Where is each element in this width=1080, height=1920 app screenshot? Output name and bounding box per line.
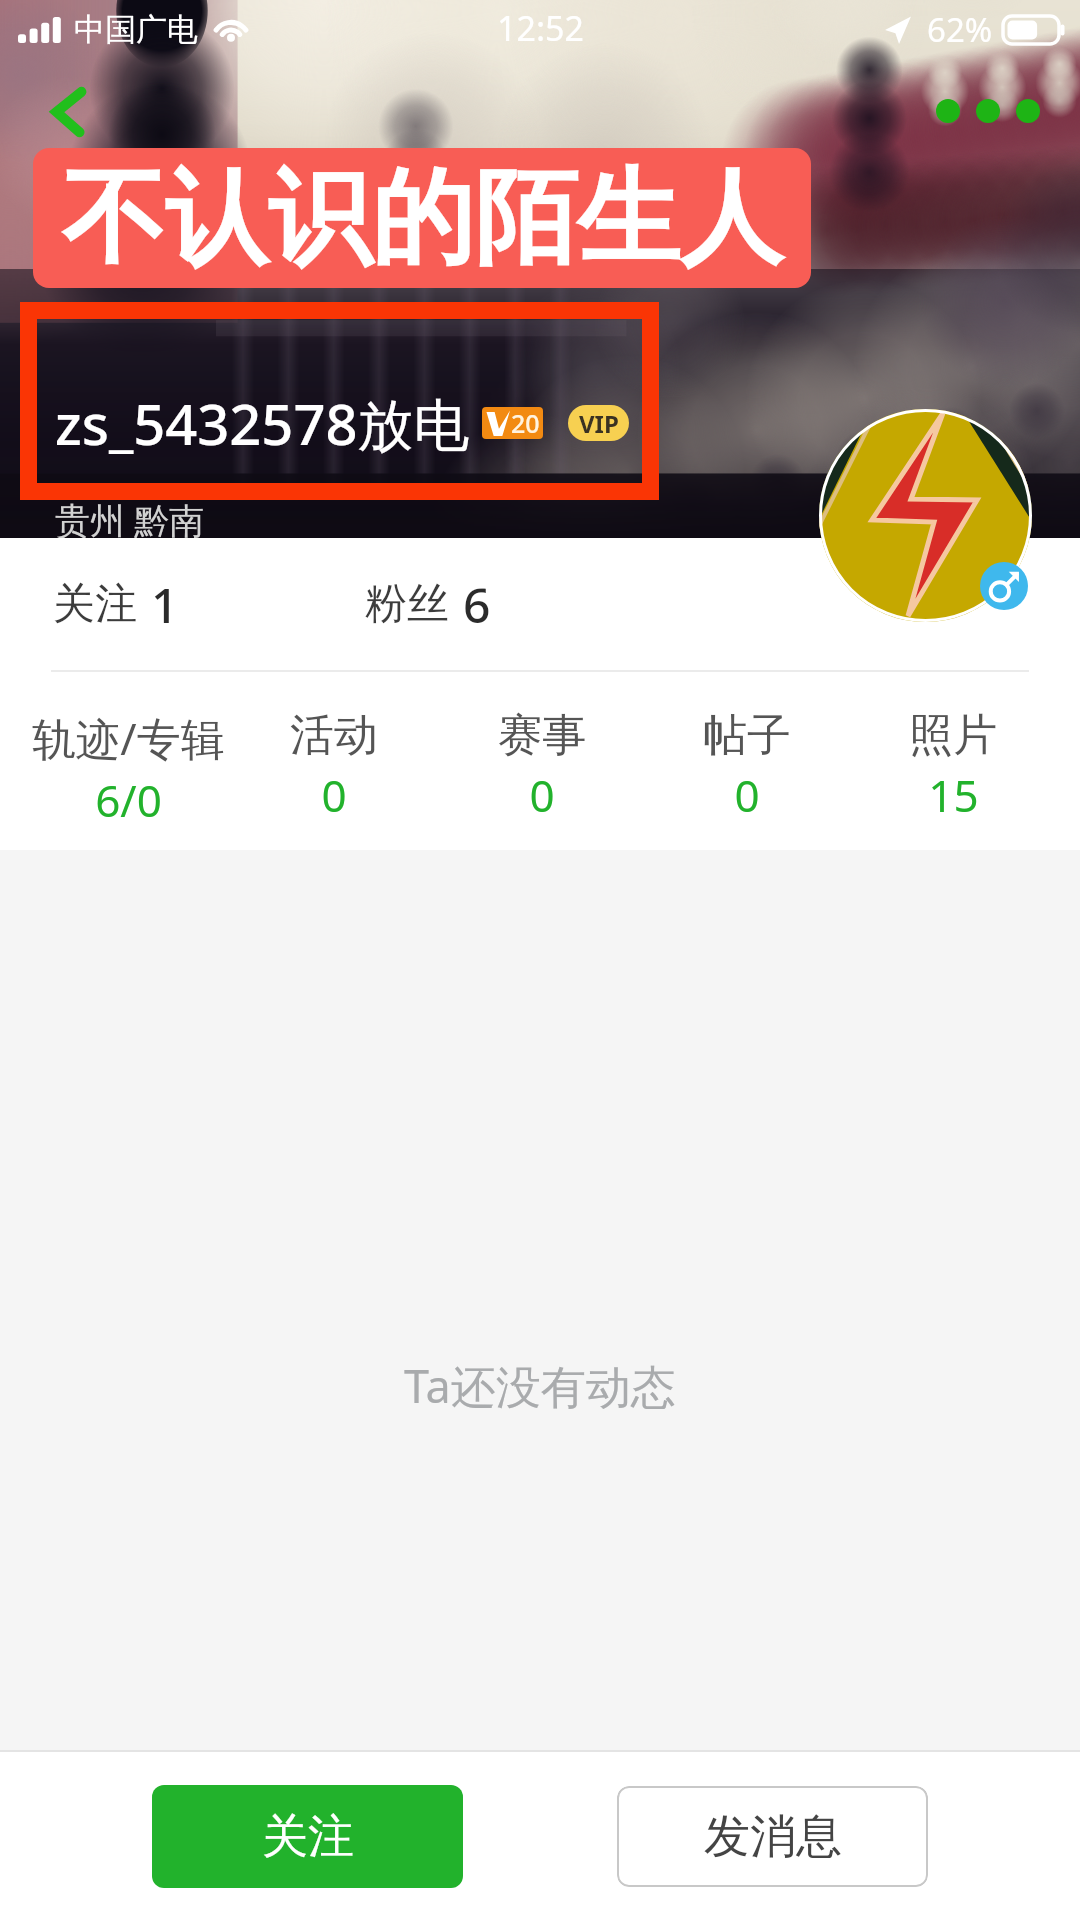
staticText: Ta还没有动态 [404,1355,676,1416]
button[interactable]: 照片 [850,672,1056,822]
button[interactable]: Back [26,70,110,154]
staticText: 62% [927,7,993,52]
staticText: 1 [151,572,179,637]
staticText: 粉丝 [365,578,449,631]
staticText: 赛事 [498,708,586,763]
button[interactable]: 活动 [231,672,437,822]
staticText: 照片 [909,708,997,763]
staticText: 0 [734,765,760,822]
staticText: 关注 [53,578,137,631]
staticText: 15 [928,765,979,822]
staticText: 20 [511,407,540,438]
staticText: 不认识的陌生人 [62,154,783,284]
staticText: 关注 [262,1808,354,1866]
button[interactable]: 关注 [152,1785,463,1888]
staticText: 6/0 [95,770,162,822]
button[interactable]: 关注 [49,538,183,670]
button[interactable]: 粉丝 [361,538,495,670]
staticText: 帖子 [703,708,791,763]
button[interactable]: Profile photo [819,409,1032,622]
button[interactable]: 赛事 [439,672,645,822]
staticText: 12:52 [497,5,584,51]
staticText: 发消息 [704,1808,842,1866]
staticText: 0 [321,765,347,822]
staticText: VIP [579,407,619,440]
button[interactable]: More options [936,86,1054,136]
button[interactable]: 发消息 [617,1786,928,1887]
staticText: zs_5432578放电 [55,385,470,461]
button[interactable]: 帖子 [644,672,850,822]
staticText: 轨迹/专辑 [32,708,225,768]
staticText: 贵州 黔南 [55,496,205,544]
staticText: 中国广电 [74,10,198,49]
staticText: 活动 [290,708,378,763]
button[interactable]: 轨迹/专辑 [25,672,231,822]
staticText: 0 [529,765,555,822]
staticText: 6 [463,572,491,637]
